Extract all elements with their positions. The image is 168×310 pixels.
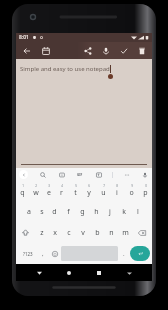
staticText: p	[143, 188, 148, 198]
button[interactable]: k	[117, 201, 131, 222]
button[interactable]: Voice typing	[140, 170, 149, 179]
staticText: 7	[103, 184, 105, 188]
button[interactable]: l	[131, 201, 145, 222]
staticText: d	[52, 207, 57, 217]
staticText: 8:01	[19, 34, 29, 41]
button[interactable]: Emoji	[49, 245, 61, 262]
staticText: .	[123, 250, 125, 258]
staticText: x	[53, 228, 57, 238]
staticText: u	[101, 188, 106, 198]
staticText: e	[47, 188, 51, 198]
button[interactable]: 0	[138, 181, 152, 201]
button[interactable]: Recent apps	[92, 266, 106, 280]
button[interactable]: Backspace	[132, 222, 152, 243]
button[interactable]: Simple and easy to use notepad	[16, 59, 152, 168]
button[interactable]: Hide keyboard	[122, 266, 136, 280]
button[interactable]: 8	[110, 181, 124, 201]
button[interactable]: ?123	[18, 245, 37, 262]
staticText: b	[95, 228, 100, 238]
staticText: s	[40, 207, 44, 217]
button[interactable]: Translate	[94, 170, 103, 179]
button[interactable]: 2	[29, 181, 42, 201]
button[interactable]: Back	[32, 266, 46, 280]
staticText: 9	[131, 184, 133, 188]
staticText: GIF	[77, 173, 83, 177]
staticText: 1	[22, 184, 24, 188]
button[interactable]: Home	[62, 266, 76, 280]
button[interactable]: Stickers	[57, 170, 66, 179]
button[interactable]: z	[35, 222, 48, 243]
staticText: i	[116, 188, 118, 198]
staticText: w	[33, 188, 39, 198]
button[interactable]: Voice input	[99, 44, 113, 58]
button[interactable]: v	[76, 222, 90, 243]
staticText: 2	[35, 184, 37, 188]
button[interactable]: m	[118, 222, 132, 243]
staticText: z	[40, 228, 44, 238]
button[interactable]: Delete	[135, 44, 149, 58]
button[interactable]: x	[48, 222, 62, 243]
button[interactable]: More options	[122, 170, 131, 179]
staticText: t	[74, 188, 77, 198]
staticText: o	[129, 188, 134, 198]
button[interactable]: Date	[39, 44, 53, 58]
staticText: k	[122, 207, 126, 217]
button[interactable]: GIF	[75, 170, 85, 179]
button[interactable]: g	[75, 201, 89, 222]
staticText: 0	[145, 184, 147, 188]
button[interactable]: f	[61, 201, 75, 222]
staticText: 8	[116, 184, 118, 188]
staticText: v	[81, 228, 85, 238]
button[interactable]: b	[90, 222, 104, 243]
button[interactable]: 1	[16, 181, 29, 201]
button[interactable]: n	[104, 222, 118, 243]
staticText: r	[60, 188, 63, 198]
button[interactable]: Save	[117, 44, 131, 58]
button[interactable]: j	[103, 201, 117, 222]
staticText: ?123	[23, 251, 33, 257]
staticText: 5	[75, 184, 77, 188]
staticText: Simple and easy to use notepad	[20, 65, 110, 73]
staticText: l	[137, 207, 139, 217]
button[interactable]: Expand toolbar	[19, 170, 28, 179]
staticText: 6	[88, 184, 90, 188]
staticText: h	[94, 207, 99, 217]
button[interactable]: 4	[55, 181, 68, 201]
button[interactable]: d	[48, 201, 61, 222]
button[interactable]: 6	[82, 181, 96, 201]
button[interactable]: Shift	[16, 222, 35, 243]
staticText: f	[67, 207, 70, 217]
button[interactable]: 5	[68, 181, 82, 201]
button[interactable]: Search	[38, 170, 47, 179]
staticText: q	[20, 188, 25, 198]
staticText: g	[80, 207, 85, 217]
button[interactable]: a	[22, 201, 35, 222]
button[interactable]: 9	[124, 181, 138, 201]
button[interactable]: s	[35, 201, 48, 222]
button[interactable]: Share	[81, 44, 95, 58]
button[interactable]: Back	[20, 44, 34, 58]
staticText: y	[87, 188, 91, 198]
button[interactable]: 3	[42, 181, 55, 201]
button[interactable]: .	[118, 245, 130, 262]
staticText: c	[67, 228, 71, 238]
staticText: 3	[48, 184, 50, 188]
button[interactable]: c	[62, 222, 76, 243]
staticText: m	[122, 228, 129, 238]
staticText: j	[109, 207, 111, 217]
button[interactable]: ,	[37, 245, 49, 262]
staticText: 4	[61, 184, 63, 188]
staticText: a	[27, 207, 31, 217]
staticText: ,	[42, 250, 44, 258]
staticText: n	[109, 228, 114, 238]
button[interactable]: Enter	[130, 246, 150, 261]
button[interactable]: h	[89, 201, 103, 222]
button[interactable]: 7	[96, 181, 110, 201]
